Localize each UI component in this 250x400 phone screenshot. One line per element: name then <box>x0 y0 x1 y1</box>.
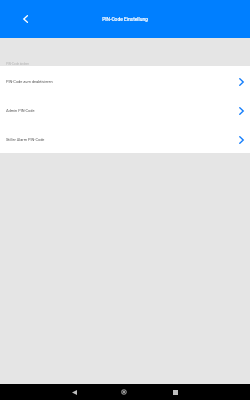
button[interactable]: Back <box>17 11 33 27</box>
button[interactable]: Admin PIN-Code <box>0 95 250 124</box>
button[interactable]: Recent apps <box>168 385 182 399</box>
button[interactable]: Stiller Alarm PIN-Code <box>0 124 250 153</box>
staticText: PIN-Code zum deaktivieren <box>6 79 53 84</box>
staticText: Stiller Alarm PIN-Code <box>6 137 45 142</box>
button[interactable]: Back <box>67 385 81 399</box>
button[interactable]: PIN-Code zum deaktivieren <box>0 66 250 95</box>
staticText: Admin PIN-Code <box>6 108 35 113</box>
staticText: PIN-Code Einstellung <box>102 16 148 22</box>
button[interactable]: Home <box>117 385 131 399</box>
staticText: PIN-Code ändern <box>6 62 30 66</box>
